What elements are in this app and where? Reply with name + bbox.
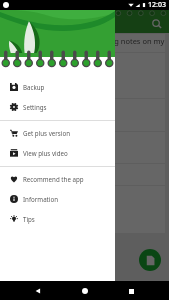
button[interactable]: View plus video [0, 143, 115, 163]
staticText: 12:03 [148, 0, 166, 10]
button[interactable]: Tips [0, 209, 115, 229]
staticText: Backup [23, 83, 45, 91]
button[interactable] [3, 164, 165, 185]
button[interactable] [3, 186, 165, 233]
staticText: Tips [23, 215, 35, 223]
button[interactable]: Welcome! You can start. writing notes on… [3, 34, 165, 52]
button[interactable]: Get plus version [0, 123, 115, 143]
button[interactable]: Back [30, 283, 46, 299]
staticText: View plus video [23, 149, 68, 157]
button[interactable]: Backup [0, 77, 115, 97]
button[interactable]: Information [0, 189, 115, 209]
button[interactable]: Recommend the app [0, 169, 115, 189]
button[interactable]: Recents [123, 283, 139, 299]
staticText: Get plus version [23, 129, 70, 137]
button[interactable]: Home [77, 283, 93, 299]
button[interactable]: Search [151, 18, 163, 30]
button[interactable]: New note [139, 249, 161, 271]
staticText: Welcome! You can start. writing notes on… [8, 36, 165, 46]
button[interactable]: Settings [0, 97, 115, 117]
button[interactable] [3, 132, 165, 163]
button[interactable] [3, 99, 165, 131]
staticText: Settings [23, 103, 47, 111]
staticText: Information [23, 195, 59, 203]
staticText: Recommend the app [23, 175, 84, 183]
button[interactable] [3, 53, 165, 98]
